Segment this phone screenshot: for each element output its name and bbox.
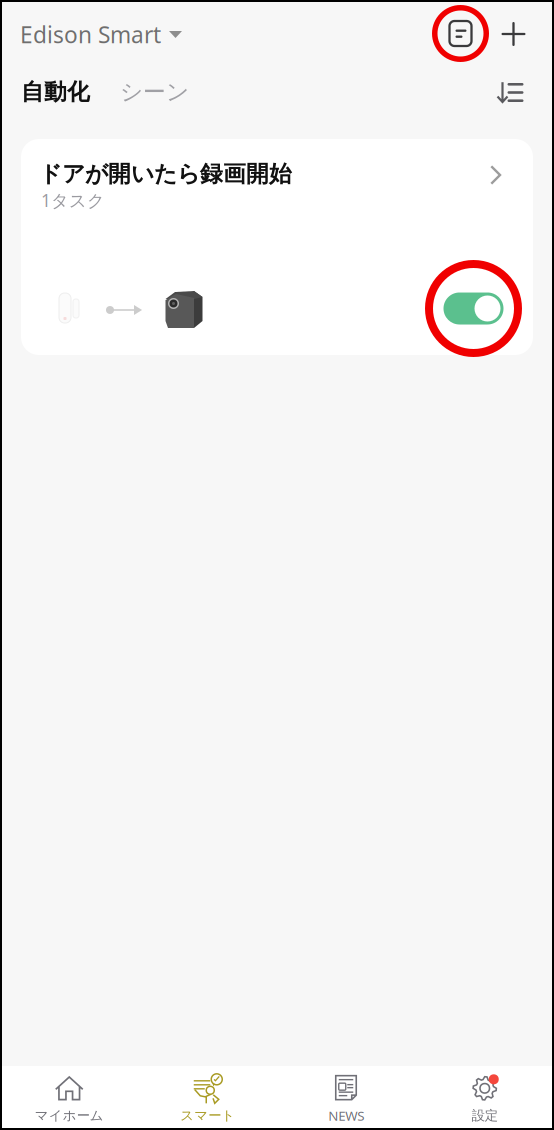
button[interactable]: Automation log [429,0,492,65]
staticText: スマート [180,1107,235,1124]
button[interactable]: スマート [138,1066,277,1130]
staticText: NEWS [328,1107,364,1124]
button[interactable]: 設定 [415,1066,554,1130]
button[interactable]: Add automation [492,0,535,65]
staticText: 設定 [472,1107,498,1124]
button[interactable]: シーン [90,69,189,115]
staticText: マイホーム [35,1107,104,1124]
staticText: 自動化 [21,78,90,106]
staticText: ドアが開いたら録画開始 [39,160,292,188]
button[interactable]: マイホーム [0,1066,138,1130]
button[interactable]: Edison Smart [0,4,182,58]
staticText: 1タスク [41,189,105,212]
button[interactable]: NEWS [277,1066,415,1130]
button[interactable]: 自動化 [0,69,90,115]
button[interactable]: ドアが開いたら録画開始 [21,139,533,355]
staticText: シーン [120,78,189,106]
button[interactable]: Sort [481,68,539,116]
staticText: Edison Smart [20,19,161,49]
